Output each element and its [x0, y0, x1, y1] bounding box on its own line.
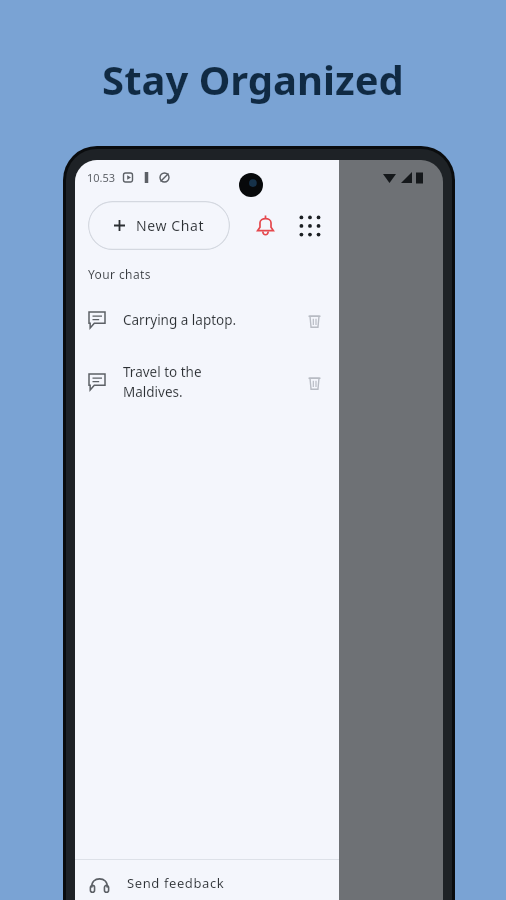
button[interactable]: New Chat — [88, 201, 230, 250]
staticText: Stay Organized — [0, 52, 506, 106]
staticText: Travel to the Maldives. — [123, 363, 302, 401]
button[interactable]: Travel to the Maldives. — [75, 356, 339, 408]
staticText: New Chat — [136, 216, 205, 235]
button[interactable]: Carrying a laptop. — [75, 300, 339, 340]
button[interactable]: Send feedback — [75, 860, 339, 900]
staticText: 10.53 — [87, 170, 116, 185]
button[interactable]: Notifications — [246, 206, 284, 244]
staticText: Your chats — [88, 266, 151, 282]
staticText: Send feedback — [127, 874, 225, 892]
button[interactable]: Delete chat 2 — [302, 370, 326, 394]
button[interactable]: Apps — [292, 206, 326, 244]
staticText: Carrying a laptop. — [123, 311, 302, 329]
button[interactable]: Delete chat 1 — [302, 308, 326, 332]
